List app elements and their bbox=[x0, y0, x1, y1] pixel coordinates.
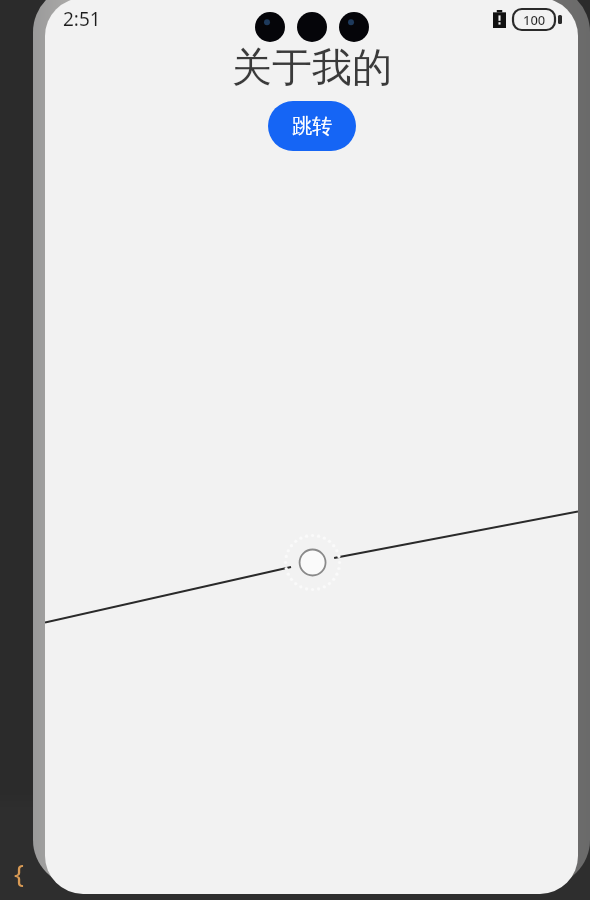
staticText: 关于我的 bbox=[232, 42, 392, 92]
staticText: 2:51 bbox=[63, 6, 101, 32]
staticText: 跳转 bbox=[292, 114, 332, 139]
button[interactable]: 跳转 bbox=[268, 101, 356, 151]
staticText: { bbox=[14, 855, 24, 890]
staticText: 100 bbox=[523, 11, 546, 29]
other: Battery alert bbox=[493, 10, 506, 28]
